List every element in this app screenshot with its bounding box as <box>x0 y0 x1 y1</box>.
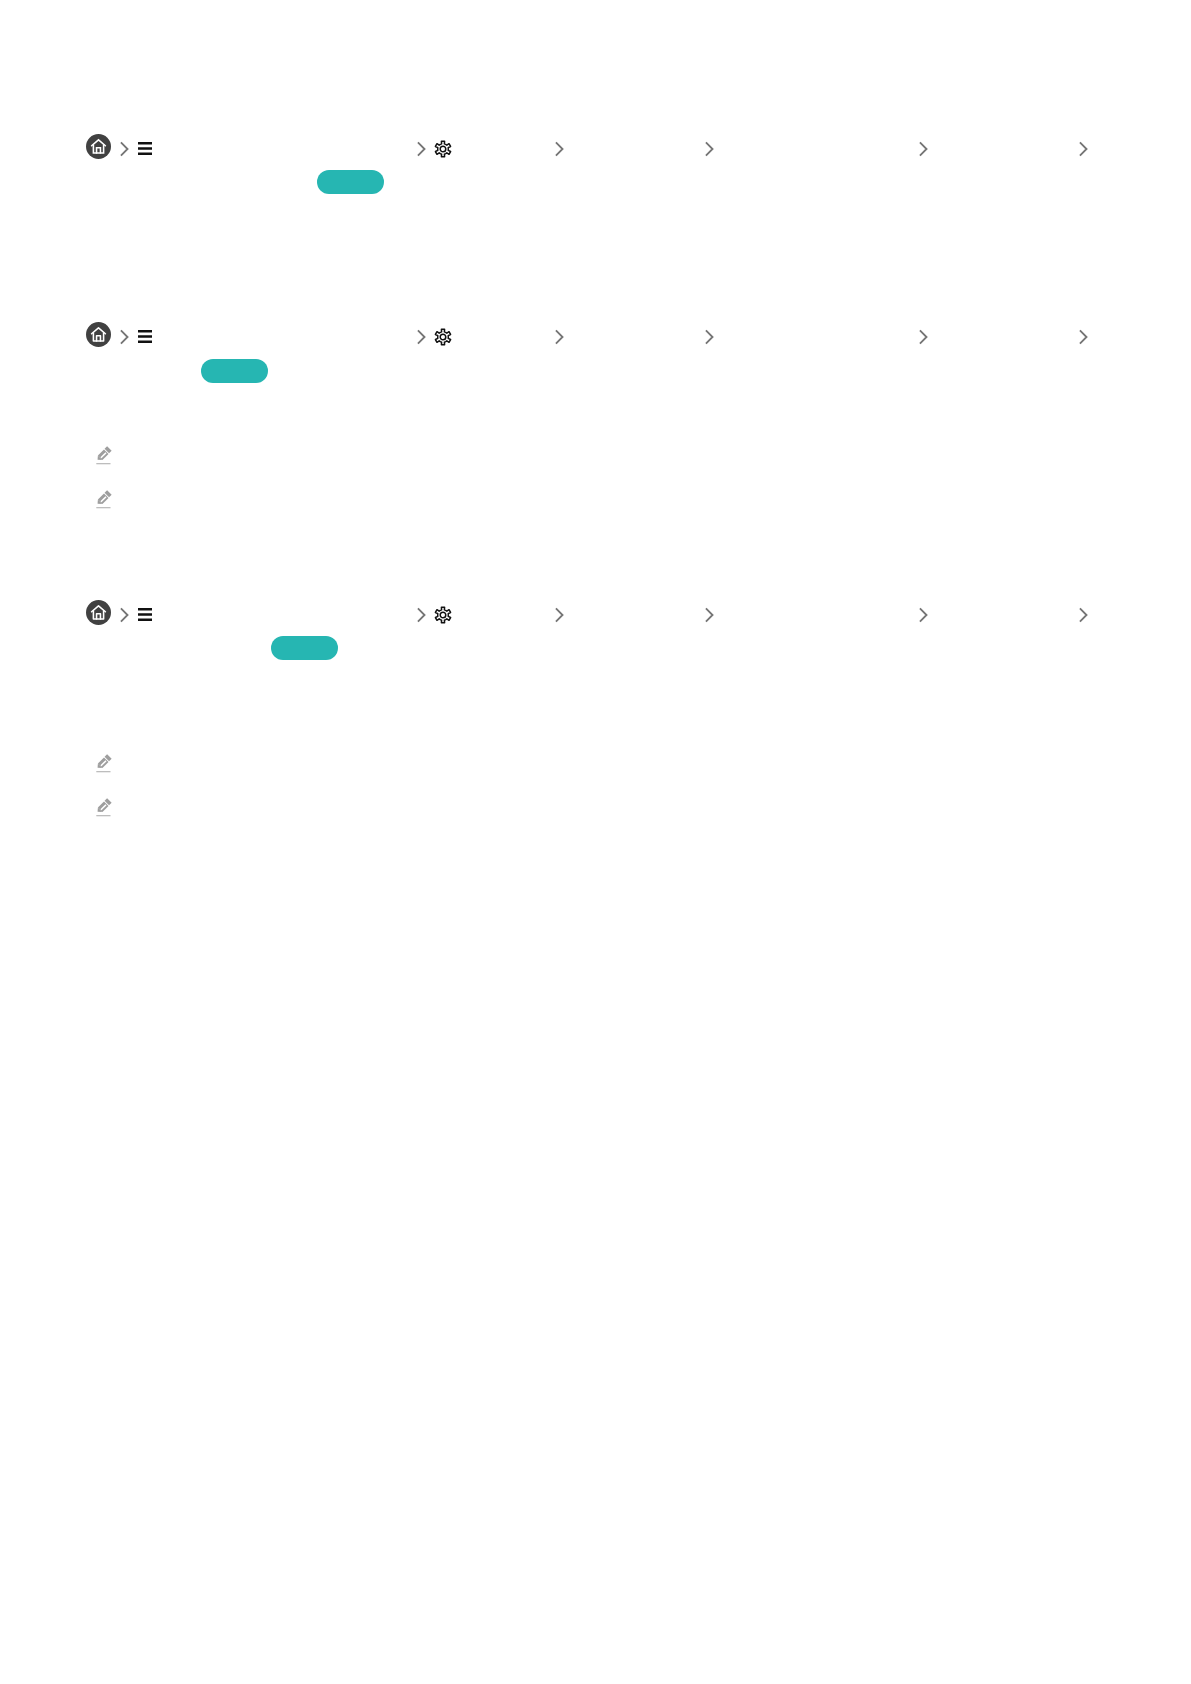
button[interactable]: Note <box>96 489 111 509</box>
button[interactable]: Home <box>86 322 111 347</box>
button[interactable]: Settings <box>434 606 452 624</box>
button[interactable]: Note <box>96 445 111 465</box>
button[interactable]: Home <box>86 134 111 159</box>
button[interactable]: Menu <box>138 608 152 621</box>
button[interactable]: Note <box>96 797 111 817</box>
button[interactable]: Menu <box>138 330 152 343</box>
button[interactable]: Note <box>96 753 111 773</box>
button[interactable]: Selected option <box>271 636 338 660</box>
button[interactable]: Settings <box>434 140 452 158</box>
button[interactable]: Settings <box>434 328 452 346</box>
button[interactable]: Selected option <box>317 170 384 194</box>
button[interactable]: Menu <box>138 142 152 155</box>
button[interactable]: Selected option <box>201 359 268 383</box>
button[interactable]: Home <box>86 600 111 625</box>
